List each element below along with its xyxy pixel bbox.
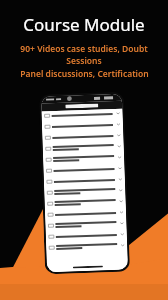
button[interactable]: Expand — [46, 230, 127, 243]
button[interactable]: Expand — [42, 120, 123, 133]
button[interactable]: Expand — [44, 175, 125, 188]
button[interactable]: Expand — [43, 142, 124, 155]
other: Expand — [120, 200, 123, 203]
other: Expand — [121, 244, 124, 247]
button[interactable]: Expand — [41, 109, 123, 122]
staticText: Course Module — [23, 13, 145, 36]
other: Expand — [118, 145, 121, 148]
other: Expand — [117, 123, 120, 126]
other: Expand — [120, 222, 123, 225]
staticText: Panel discussions, Certification — [20, 68, 149, 80]
button[interactable]: Expand — [45, 219, 127, 232]
other: Expand — [117, 134, 120, 137]
button[interactable]: Expand — [43, 153, 124, 166]
other: Expand — [120, 211, 123, 214]
staticText: 90+ Videos case studies, Doubt Sessions — [5, 43, 163, 67]
button[interactable]: Expand — [42, 131, 123, 144]
other: Expand — [119, 178, 122, 181]
button[interactable]: Expand — [45, 208, 126, 221]
button[interactable]: Expand — [43, 164, 125, 177]
other: Expand — [116, 112, 120, 115]
other: Expand — [118, 156, 121, 159]
other: Expand — [119, 189, 122, 192]
button[interactable]: Expand — [46, 241, 127, 254]
other: Expand — [118, 167, 122, 170]
button[interactable]: Expand — [44, 197, 126, 210]
button[interactable]: Expand — [44, 186, 125, 199]
other: Expand — [121, 233, 124, 236]
